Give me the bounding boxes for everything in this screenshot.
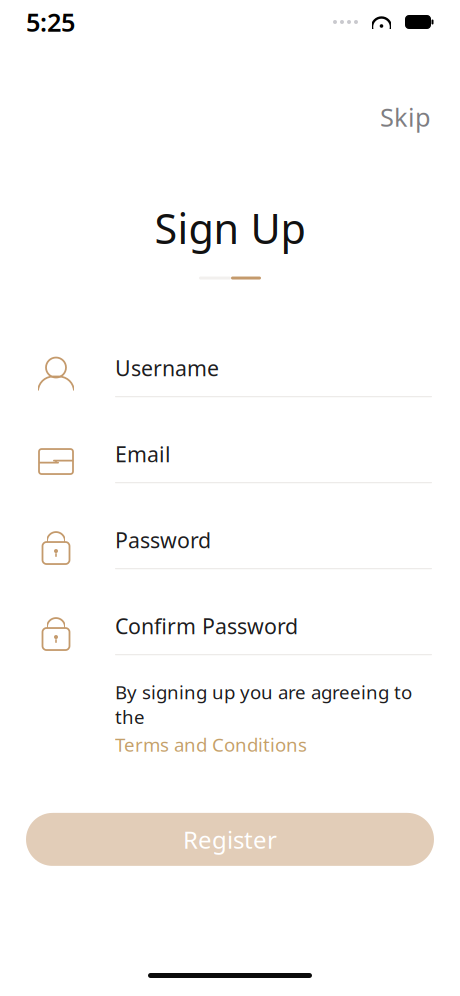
staticText: Email — [115, 440, 171, 468]
button[interactable]: Register — [26, 813, 434, 866]
staticText: By signing up you are agreeing to the — [115, 679, 412, 729]
staticText: Terms and Conditions — [115, 732, 307, 757]
button[interactable]: Skip — [366, 90, 445, 144]
staticText: Skip — [380, 100, 431, 134]
staticText: Confirm Password — [115, 612, 298, 640]
staticText: Password — [115, 526, 211, 554]
staticText: 5:25 — [26, 5, 75, 39]
staticText: Register — [183, 823, 277, 855]
button[interactable]: Terms and Conditions — [115, 732, 307, 757]
staticText: Sign Up — [154, 201, 305, 255]
staticText: Username — [115, 354, 219, 382]
